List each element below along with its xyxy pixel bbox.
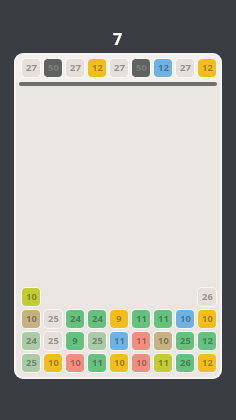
staticText: 10 [48, 356, 59, 369]
button[interactable]: 12 [198, 59, 216, 77]
staticText: 27 [114, 61, 125, 74]
button[interactable]: 12 [88, 59, 106, 77]
button[interactable]: 26 [176, 354, 194, 372]
button[interactable]: 50 [44, 59, 62, 77]
button[interactable]: 24 [66, 310, 84, 328]
button[interactable]: 10 [132, 354, 150, 372]
staticText: 12 [202, 334, 213, 347]
staticText: 10 [202, 312, 213, 325]
button[interactable]: 12 [198, 332, 216, 350]
button[interactable]: 10 [22, 288, 40, 306]
button[interactable]: 25 [44, 310, 62, 328]
staticText: 24 [26, 334, 37, 347]
staticText: 11 [158, 356, 169, 369]
button[interactable]: 11 [132, 332, 150, 350]
button[interactable]: 25 [176, 332, 194, 350]
staticText: 26 [202, 290, 213, 303]
button[interactable]: 27 [22, 59, 40, 77]
staticText: 25 [180, 334, 191, 347]
staticText: 27 [180, 61, 191, 74]
staticText: 25 [26, 356, 37, 369]
button[interactable]: 27 [66, 59, 84, 77]
button[interactable]: 24 [22, 332, 40, 350]
button[interactable]: 10 [22, 310, 40, 328]
staticText: 9 [72, 334, 78, 347]
button[interactable]: 24 [88, 310, 106, 328]
staticText: 12 [202, 356, 213, 369]
staticText: 25 [92, 334, 103, 347]
staticText: 12 [92, 61, 103, 74]
staticText: 26 [180, 356, 191, 369]
button[interactable]: 11 [154, 310, 172, 328]
button[interactable]: 27 [176, 59, 194, 77]
staticText: 50 [136, 61, 147, 74]
button[interactable]: 10 [198, 310, 216, 328]
button[interactable]: 9 [66, 332, 84, 350]
staticText: 10 [180, 312, 191, 325]
staticText: 27 [26, 61, 37, 74]
button[interactable]: 27 [110, 59, 128, 77]
staticText: 11 [158, 312, 169, 325]
button[interactable]: 25 [88, 332, 106, 350]
button[interactable]: 11 [154, 354, 172, 372]
button[interactable]: 50 [132, 59, 150, 77]
staticText: 25 [48, 312, 59, 325]
staticText: 11 [136, 334, 147, 347]
staticText: 11 [136, 312, 147, 325]
button[interactable]: 11 [110, 332, 128, 350]
button[interactable]: 12 [154, 59, 172, 77]
button[interactable]: 11 [88, 354, 106, 372]
staticText: 7 [113, 28, 123, 50]
button[interactable]: 11 [132, 310, 150, 328]
staticText: 27 [70, 61, 81, 74]
staticText: 10 [114, 356, 125, 369]
staticText: 24 [70, 312, 81, 325]
staticText: 9 [116, 312, 122, 325]
button[interactable]: 25 [44, 332, 62, 350]
button[interactable]: 25 [22, 354, 40, 372]
staticText: 10 [26, 290, 37, 303]
staticText: 11 [114, 334, 125, 347]
staticText: 10 [26, 312, 37, 325]
button[interactable]: 26 [198, 288, 216, 306]
button[interactable]: 10 [176, 310, 194, 328]
button[interactable]: 10 [110, 354, 128, 372]
staticText: 11 [92, 356, 103, 369]
staticText: 12 [158, 61, 169, 74]
button[interactable]: 12 [198, 354, 216, 372]
staticText: 50 [48, 61, 59, 74]
staticText: 10 [158, 334, 169, 347]
staticText: 10 [70, 356, 81, 369]
staticText: 24 [92, 312, 103, 325]
button[interactable]: 10 [66, 354, 84, 372]
staticText: 12 [202, 61, 213, 74]
button[interactable]: 10 [44, 354, 62, 372]
button[interactable]: 10 [154, 332, 172, 350]
button[interactable]: 9 [110, 310, 128, 328]
staticText: 25 [48, 334, 59, 347]
staticText: 10 [136, 356, 147, 369]
